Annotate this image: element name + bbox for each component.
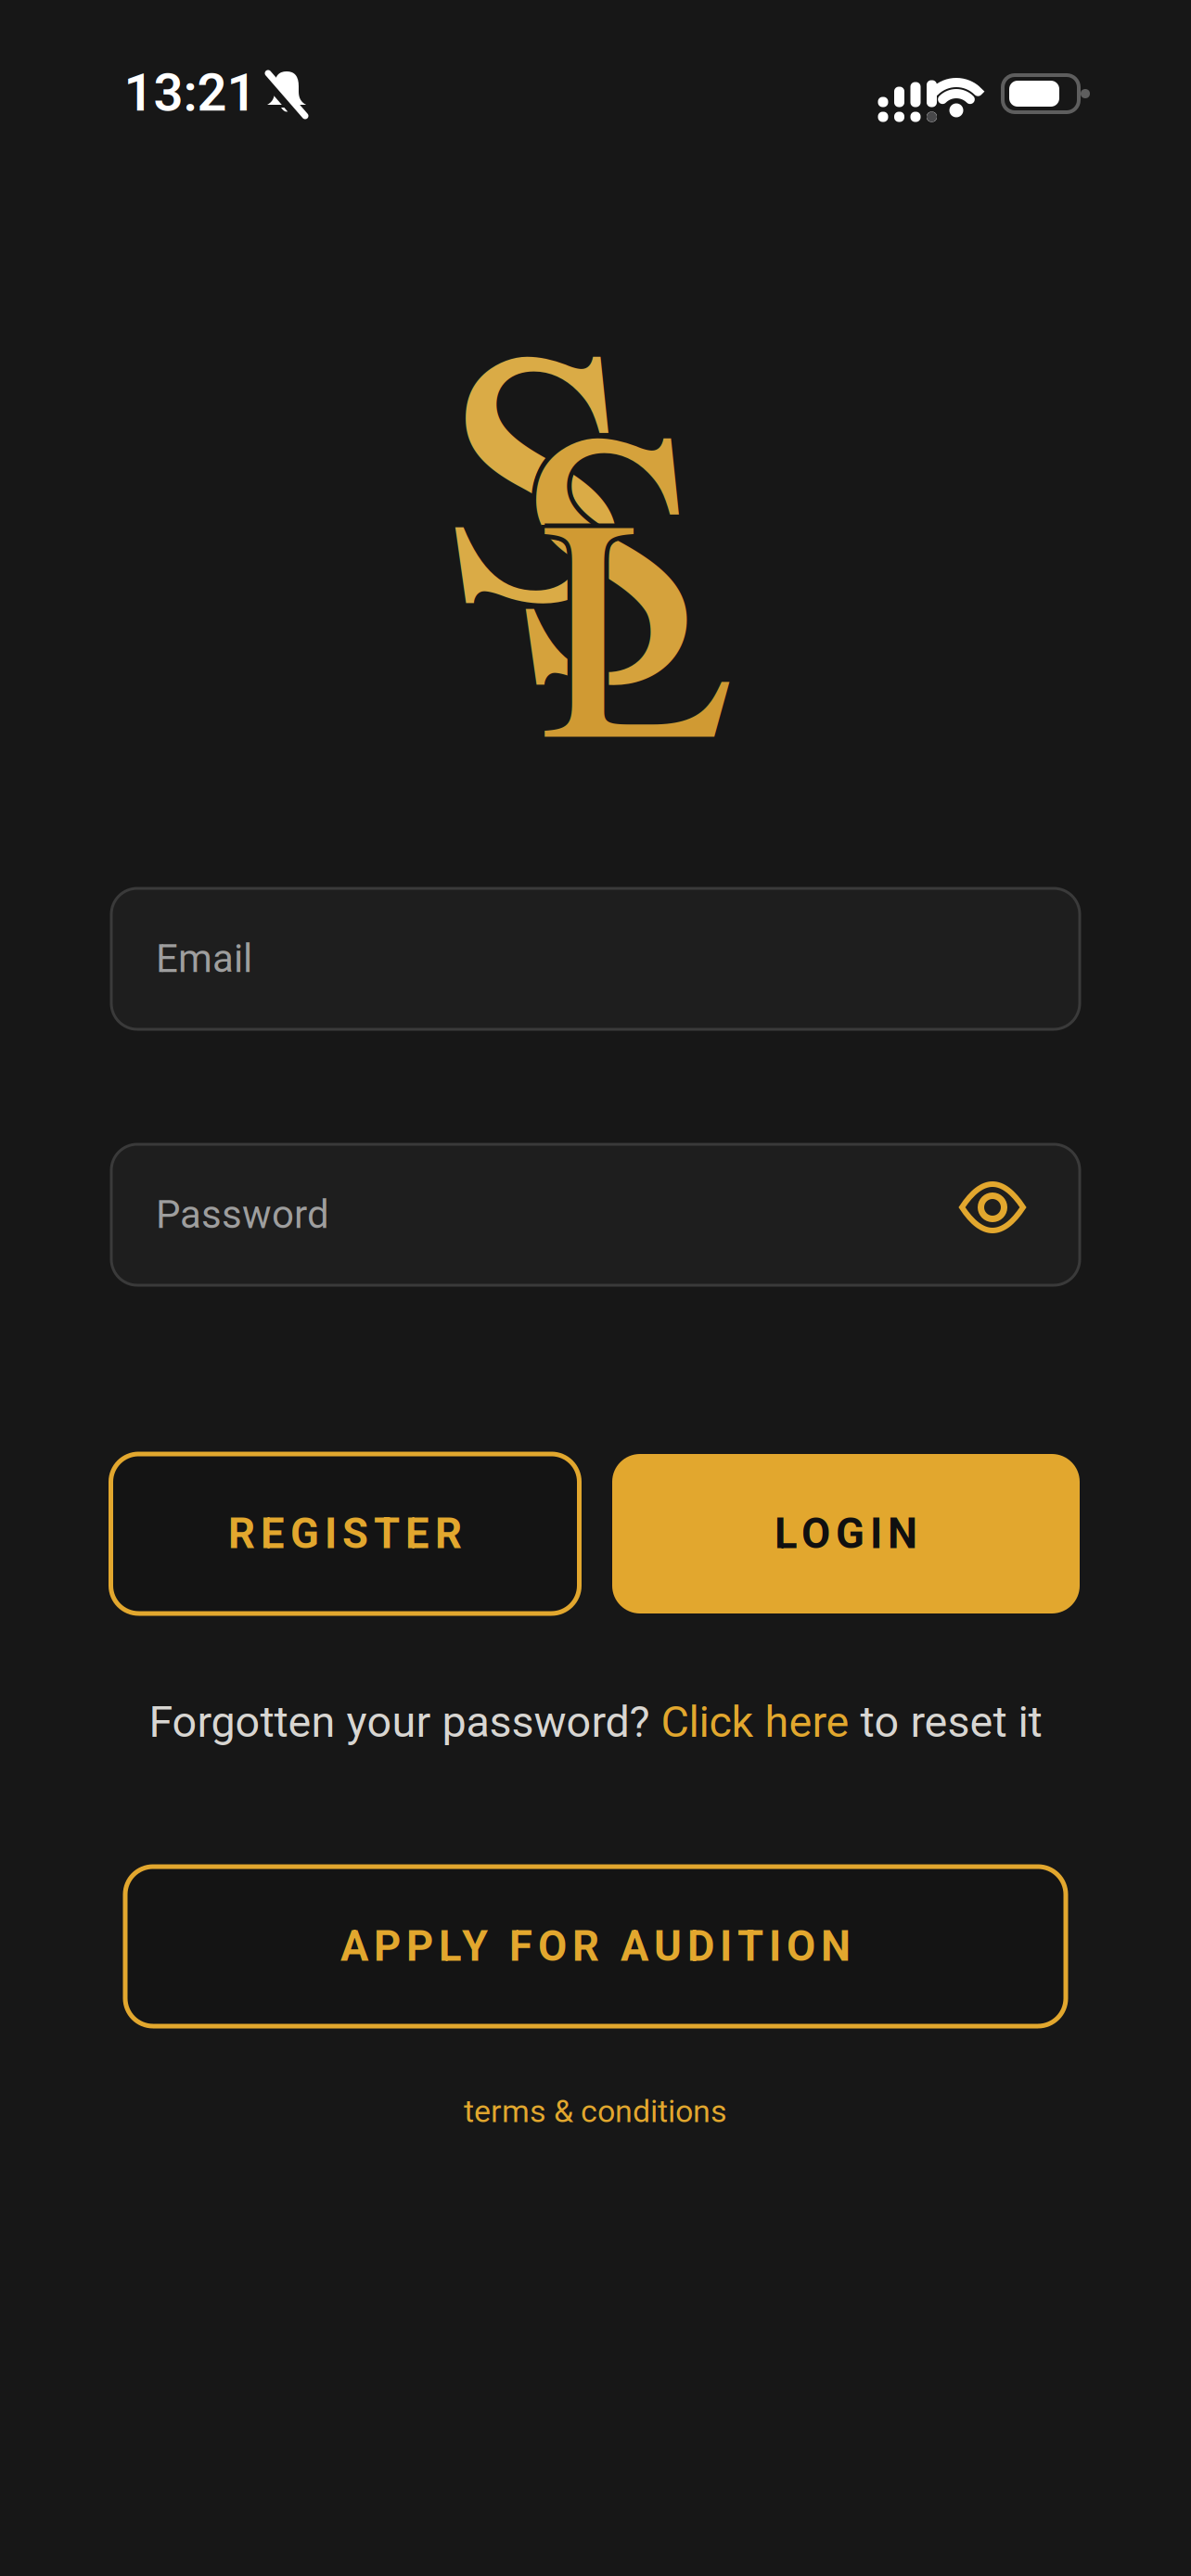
staticText: S bbox=[507, 305, 707, 784]
button[interactable]: Click here bbox=[661, 1697, 849, 1747]
staticText: S bbox=[514, 299, 713, 778]
staticText: L bbox=[545, 404, 738, 825]
staticText: S bbox=[511, 307, 710, 786]
staticText: S bbox=[514, 305, 713, 784]
button[interactable]: terms & conditions bbox=[464, 2093, 727, 2130]
staticText: S bbox=[511, 297, 710, 776]
staticText: terms & conditions bbox=[464, 2093, 727, 2130]
staticText: Click here bbox=[661, 1697, 849, 1747]
staticText: Email bbox=[156, 936, 252, 982]
button[interactable]: LOGIN bbox=[612, 1454, 1080, 1613]
button[interactable]: Password bbox=[111, 1144, 1080, 1285]
staticText: L bbox=[541, 409, 734, 830]
staticText: L bbox=[544, 401, 737, 822]
staticText: LOGIN bbox=[775, 1509, 917, 1558]
staticText: S bbox=[515, 302, 715, 781]
staticText: L bbox=[538, 407, 730, 829]
staticText: S bbox=[507, 299, 707, 778]
staticText: S bbox=[511, 302, 710, 781]
staticText: 13:21 bbox=[124, 62, 256, 123]
button[interactable]: Show password bbox=[957, 1179, 1028, 1236]
staticText: S bbox=[440, 220, 640, 699]
button[interactable]: Email bbox=[111, 888, 1080, 1029]
staticText: APPLY FOR AUDITION bbox=[340, 1922, 851, 1971]
staticText: REGISTER bbox=[228, 1509, 462, 1558]
button[interactable]: REGISTER bbox=[111, 1454, 579, 1613]
staticText: L bbox=[541, 400, 734, 821]
staticText: Forgotten your password? bbox=[149, 1697, 661, 1747]
button[interactable]: APPLY FOR AUDITION bbox=[125, 1867, 1066, 2026]
staticText: L bbox=[538, 401, 730, 822]
staticText: S bbox=[506, 302, 705, 781]
staticText: L bbox=[541, 404, 734, 825]
staticText: L bbox=[536, 404, 729, 825]
staticText: Password bbox=[156, 1192, 329, 1238]
staticText: to reset it bbox=[849, 1697, 1042, 1747]
staticText: L bbox=[544, 407, 737, 829]
